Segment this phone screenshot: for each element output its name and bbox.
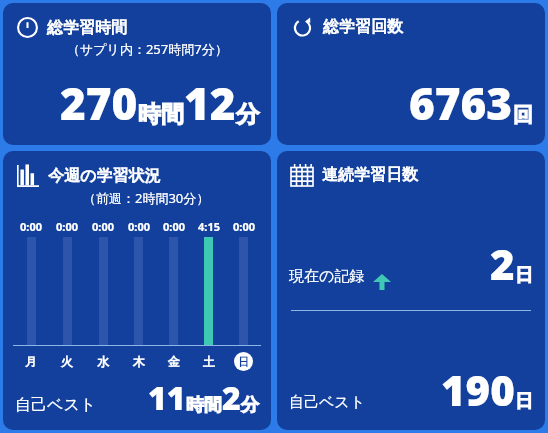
staticText: 現在の記録 — [289, 267, 365, 286]
staticText: 0:00 — [163, 219, 185, 234]
button[interactable]: Total study count — [277, 3, 545, 145]
button[interactable]: Total study time — [3, 3, 271, 145]
staticText: 水 — [97, 354, 109, 369]
staticText: 月 — [25, 354, 37, 369]
staticText: 270 — [60, 73, 138, 133]
staticText: 190 — [441, 361, 515, 418]
staticText: 自己ベスト — [15, 395, 97, 415]
button[interactable]: Weekly study status — [3, 151, 271, 430]
staticText: （前週：2時間30分） — [83, 189, 210, 207]
staticText: 0:00 — [233, 219, 255, 234]
other: Total study count — [291, 15, 314, 38]
button[interactable]: Streak days — [277, 151, 545, 430]
staticText: 日 — [515, 390, 533, 413]
staticText: 総学習時間 — [47, 18, 127, 38]
staticText: 日 — [515, 264, 533, 287]
staticText: 6763 — [409, 73, 513, 133]
staticText: 12 — [184, 73, 236, 133]
staticText: 日 — [238, 355, 249, 369]
staticText: 総学習回数 — [323, 17, 403, 37]
staticText: 0:00 — [20, 219, 42, 234]
staticText: （サプリ内：257時間7分） — [67, 40, 228, 58]
staticText: 今週の学習状況 — [48, 166, 161, 186]
other: Total study time — [17, 17, 38, 38]
other: Increasing — [373, 274, 391, 290]
staticText: 分 — [236, 100, 259, 129]
staticText: 分 — [241, 394, 259, 417]
staticText: 火 — [61, 354, 73, 369]
staticText: 0:00 — [56, 219, 78, 234]
staticText: 土 — [203, 354, 215, 369]
staticText: 0:00 — [128, 219, 150, 234]
staticText: 自己ベスト — [289, 393, 366, 412]
staticText: 2 — [490, 235, 515, 292]
other: Weekly study status — [17, 165, 39, 187]
staticText: 4:15 — [198, 219, 220, 234]
staticText: 金 — [168, 354, 180, 369]
staticText: 2 — [222, 376, 241, 420]
staticText: 木 — [133, 354, 145, 369]
staticText: 0:00 — [92, 219, 114, 234]
other: Streak days — [291, 164, 313, 186]
staticText: 時間 — [186, 394, 222, 417]
staticText: 11 — [148, 376, 186, 420]
staticText: 回 — [513, 103, 533, 128]
staticText: 時間 — [138, 100, 184, 129]
staticText: 連続学習日数 — [322, 165, 418, 185]
